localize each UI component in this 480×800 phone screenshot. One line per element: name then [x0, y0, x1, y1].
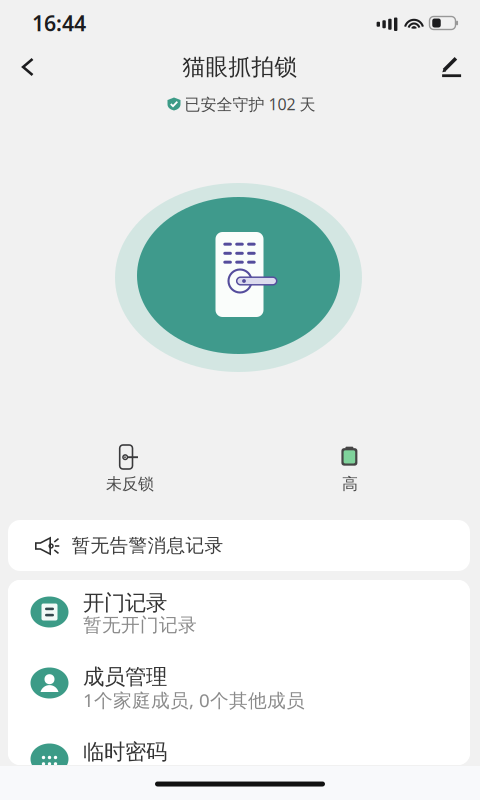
- button[interactable]: 未反锁: [85, 438, 175, 500]
- button[interactable]: 返回: [4, 45, 52, 89]
- staticText: 已安全守护 102 天: [184, 93, 315, 115]
- staticText: 临时密码: [83, 739, 167, 765]
- staticText: 未反锁: [106, 474, 154, 494]
- button[interactable]: 高: [305, 438, 395, 500]
- staticText: 暂无开门记录: [83, 613, 197, 636]
- button[interactable]: 编辑名称: [428, 45, 476, 89]
- staticText: 暂无告警消息记录: [71, 534, 223, 557]
- staticText: 高: [342, 474, 358, 494]
- button[interactable]: 成员管理: [8, 654, 470, 728]
- staticText: 16:44: [32, 9, 86, 37]
- staticText: 1个家庭成员, 0个其他成员: [83, 688, 305, 712]
- staticText: 猫眼抓拍锁: [182, 53, 297, 81]
- button[interactable]: 开门记录: [8, 580, 470, 654]
- staticText: 开门记录: [83, 590, 167, 616]
- button[interactable]: 暂无告警消息记录: [8, 520, 470, 571]
- button[interactable]: 临时密码: [8, 728, 470, 765]
- staticText: 成员管理: [83, 664, 167, 690]
